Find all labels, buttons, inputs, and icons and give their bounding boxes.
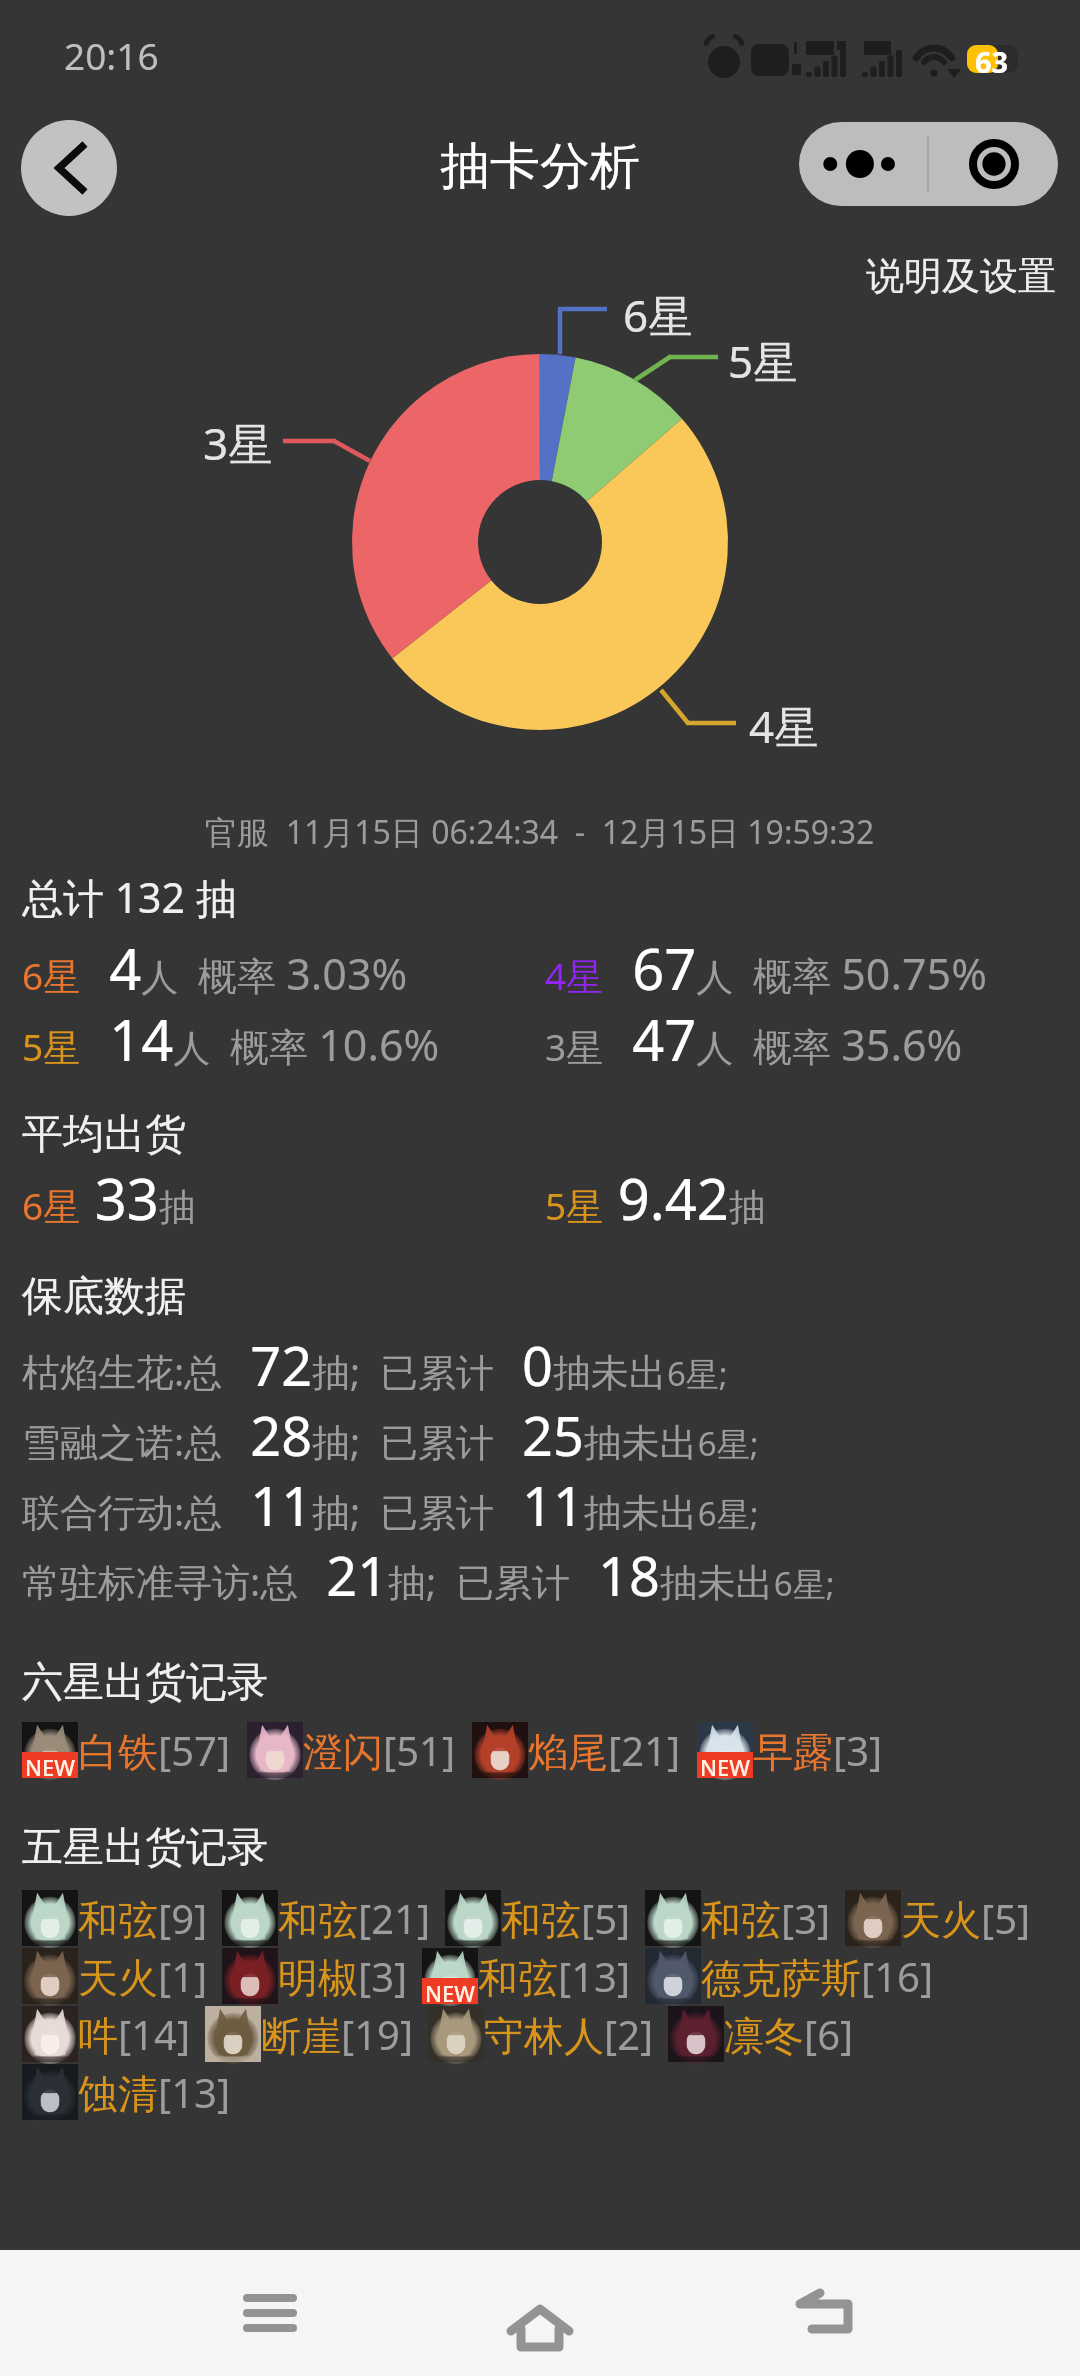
staticText: 守林人[2] <box>484 2007 654 2062</box>
button[interactable]: 和弦[3] <box>645 1890 831 1946</box>
button[interactable]: Back <box>776 2271 872 2355</box>
staticText: 和弦[21] <box>278 1891 431 1946</box>
staticText: 蚀清[13] <box>78 2065 231 2120</box>
button[interactable]: Home <box>492 2271 588 2355</box>
staticText: 官服 11月15日 06:24:34 - 12月15日 19:59:32 <box>205 810 875 854</box>
staticText: 5星 14人 概率 10.6% <box>22 1001 440 1077</box>
staticText: 保底数据 <box>22 1271 186 1323</box>
staticText: 5星 9.42抽 <box>545 1160 766 1236</box>
staticText: 断崖[19] <box>261 2007 414 2062</box>
button[interactable]: NEW <box>422 1948 631 2004</box>
button[interactable]: 和弦[9] <box>22 1890 208 1946</box>
staticText: 6星 33抽 <box>22 1160 196 1236</box>
staticText: 白铁[57] <box>78 1723 231 1778</box>
button[interactable]: 天火[1] <box>22 1948 208 2004</box>
staticText: 63 <box>975 42 1009 81</box>
button[interactable]: More options <box>799 122 927 206</box>
button[interactable]: 说明及设置 <box>866 252 1056 300</box>
staticText: 3星 47人 概率 35.6% <box>545 1001 963 1077</box>
staticText: 和弦[5] <box>501 1891 631 1946</box>
staticText: 澄闪[51] <box>303 1723 456 1778</box>
staticText: 说明及设置 <box>866 252 1056 300</box>
staticText: 德克萨斯[16] <box>701 1949 934 2004</box>
button[interactable]: 天火[5] <box>845 1890 1031 1946</box>
button[interactable]: NEW <box>697 1722 883 1778</box>
staticText: 焰尾[21] <box>528 1723 681 1778</box>
button[interactable]: 蚀清[13] <box>22 2064 231 2120</box>
staticText: 天火[5] <box>901 1891 1031 1946</box>
staticText: 吽[14] <box>78 2007 191 2062</box>
button[interactable]: 和弦[21] <box>222 1890 431 1946</box>
button[interactable]: 和弦[5] <box>445 1890 631 1946</box>
staticText: 总计 132 抽 <box>22 869 237 925</box>
staticText: 明椒[3] <box>278 1949 408 2004</box>
staticText: NEW <box>700 1752 751 1778</box>
button[interactable]: 明椒[3] <box>222 1948 408 2004</box>
button[interactable]: 吽[14] <box>22 2006 191 2062</box>
staticText: 6星 <box>623 285 693 345</box>
staticText: 天火[1] <box>78 1949 208 2004</box>
button[interactable]: 守林人[2] <box>428 2006 654 2062</box>
staticText: 4星 <box>749 696 819 756</box>
staticText: 枯焰生花:总 72抽; 已累计 0抽未出6星; <box>22 1328 728 1402</box>
staticText: 5星 <box>728 331 798 391</box>
staticText: 六星出货记录 <box>22 1657 268 1709</box>
button[interactable]: 德克萨斯[16] <box>645 1948 934 2004</box>
staticText: 五星出货记录 <box>22 1822 268 1874</box>
staticText: 4星 67人 概率 50.75% <box>545 930 987 1006</box>
button[interactable]: NEW <box>22 1722 231 1778</box>
staticText: 雪融之诺:总 28抽; 已累计 25抽未出6星; <box>22 1398 759 1472</box>
staticText: 和弦[13] <box>478 1949 631 2004</box>
button[interactable]: Menu <box>222 2271 318 2355</box>
button[interactable]: Close <box>929 122 1058 206</box>
button[interactable]: Back <box>21 120 117 216</box>
staticText: NEW <box>25 1752 76 1778</box>
staticText: 和弦[9] <box>78 1891 208 1946</box>
button[interactable]: 焰尾[21] <box>472 1722 681 1778</box>
staticText: 6星 4人 概率 3.03% <box>22 930 408 1006</box>
staticText: 3星 <box>203 413 273 473</box>
staticText: 20:16 <box>64 30 159 80</box>
staticText: 平均出货 <box>22 1109 186 1161</box>
staticText: NEW <box>425 1978 476 2004</box>
staticText: 联合行动:总 11抽; 已累计 11抽未出6星; <box>22 1468 759 1542</box>
button[interactable]: 凛冬[6] <box>668 2006 854 2062</box>
staticText: 早露[3] <box>753 1723 883 1778</box>
staticText: 凛冬[6] <box>724 2007 854 2062</box>
button[interactable]: 澄闪[51] <box>247 1722 456 1778</box>
staticText: 常驻标准寻访:总 21抽; 已累计 18抽未出6星; <box>22 1538 835 1612</box>
staticText: 抽卡分析 <box>440 135 640 198</box>
staticText: 和弦[3] <box>701 1891 831 1946</box>
button[interactable]: 断崖[19] <box>205 2006 414 2062</box>
